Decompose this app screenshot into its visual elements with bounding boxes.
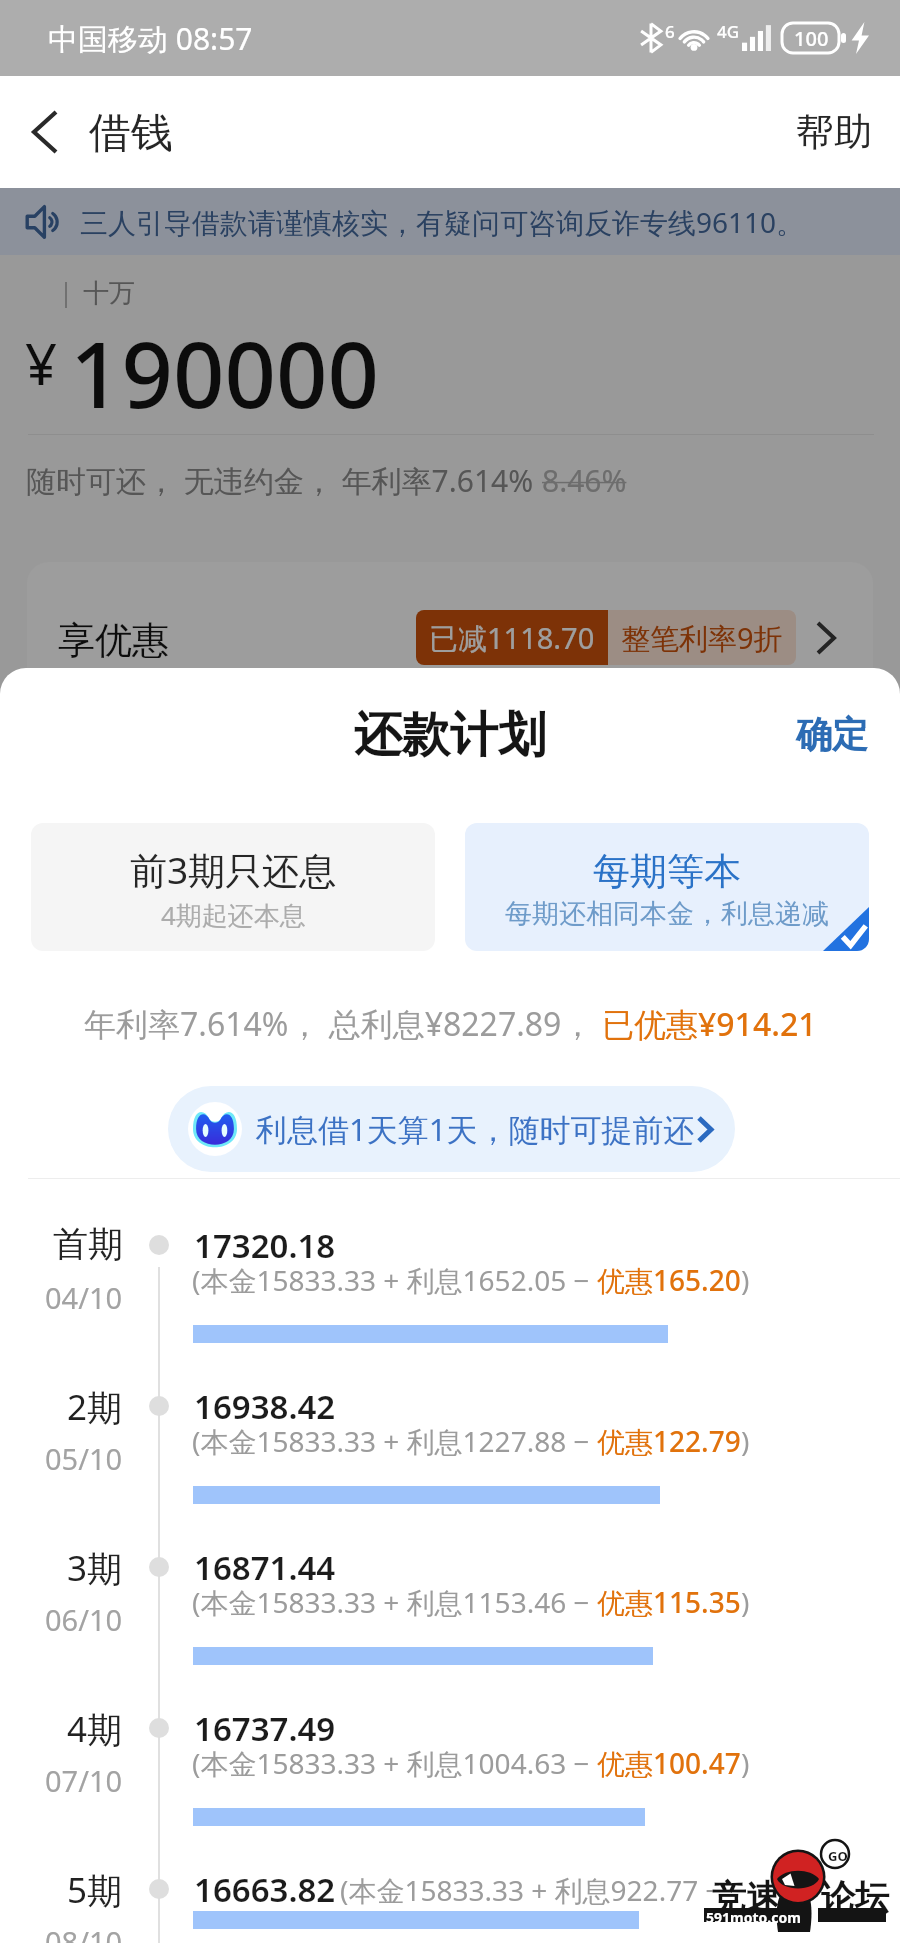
staticText: ¥ (25, 325, 58, 401)
staticText: 16871.44 (194, 1545, 336, 1590)
button[interactable]: 前3期只还息 (31, 823, 435, 951)
staticText: 优惠100.47 (597, 1744, 741, 1782)
staticText: 05/10 (45, 1439, 123, 1478)
staticText: 借钱 (89, 107, 173, 160)
staticText: 17320.18 (194, 1223, 336, 1268)
button[interactable]: 利息借1天算1天，随时可提前还 (168, 1086, 735, 1172)
staticText: 确定 (796, 712, 868, 757)
staticText: 100 (794, 25, 829, 52)
staticText: (本金15833.33 + 利息1153.46 − (192, 1583, 597, 1621)
staticText: 16938.42 (194, 1384, 336, 1429)
staticText: 6 (665, 20, 675, 43)
staticText: 优惠122.79 (597, 1422, 741, 1460)
staticText: 4期 (67, 1705, 123, 1753)
staticText: 已优惠¥914.21 (602, 1002, 817, 1046)
staticText: ) (741, 1261, 750, 1299)
staticText: 首期 (53, 1222, 123, 1266)
staticText: 随时可还， 无违约金， 年利率7.614% (26, 460, 542, 501)
staticText: 2期 (67, 1383, 123, 1431)
staticText: 享优惠 (58, 617, 169, 664)
staticText: 整笔利率9折 (621, 618, 783, 658)
staticText: 16663.82 (194, 1867, 336, 1912)
staticText: 竞速 (712, 1876, 780, 1919)
staticText: 利息借1天算1天，随时可提前还 (256, 1108, 695, 1150)
button[interactable]: 确定 (780, 698, 884, 771)
staticText: 16737.49 (194, 1706, 336, 1751)
staticText: 3期 (67, 1544, 123, 1592)
staticText: (本金15833.33 + 利息1004.63 − (192, 1744, 597, 1782)
staticText: 5期 (67, 1866, 123, 1914)
staticText: 中国移动 08:57 (48, 18, 253, 59)
button[interactable]: 帮助 (780, 94, 888, 170)
button[interactable]: Back (12, 99, 78, 165)
staticText: 8.46% (542, 460, 627, 501)
staticText: 08/10 (45, 1922, 123, 1943)
staticText: 07/10 (45, 1761, 123, 1800)
staticText: (本金15833.33 + 利息1227.88 − (192, 1422, 597, 1460)
staticText: 论坛 (821, 1876, 889, 1919)
staticText: ) (741, 1422, 750, 1460)
staticText: 04/10 (45, 1278, 123, 1317)
button[interactable]: 每期等本 (465, 823, 869, 951)
staticText: ) (741, 1583, 750, 1621)
staticText: 帮助 (796, 108, 872, 156)
staticText: ) (741, 1744, 750, 1782)
staticText: 4期起还本息 (161, 897, 306, 933)
staticText: 每期还相同本金，利息递减 (505, 897, 829, 931)
staticText: 前3期只还息 (130, 844, 337, 895)
staticText: 年利率7.614%， 总利息¥8227.89， (84, 1002, 602, 1046)
staticText: GO (828, 1847, 848, 1865)
staticText: 优惠165.20 (597, 1261, 741, 1299)
staticText: 591moto.com (706, 1908, 801, 1927)
staticText: 190000 (70, 312, 379, 435)
staticText: 优惠115.35 (597, 1583, 741, 1621)
staticText: 已减1118.70 (429, 618, 595, 658)
staticText: 06/10 (45, 1600, 123, 1639)
staticText: 4G (717, 20, 740, 43)
staticText: (本金15833.33 + 利息922.77 − (340, 1871, 729, 1909)
staticText: (本金15833.33 + 利息1652.05 − (192, 1261, 597, 1299)
staticText: 每期等本 (593, 848, 741, 895)
staticText: 十万 (83, 277, 135, 310)
staticText: 还款计划 (354, 705, 546, 765)
button[interactable]: 享优惠 (27, 562, 873, 740)
staticText: 三人引导借款请谨慎核实，有疑问可咨询反诈专线96110。 (80, 203, 805, 241)
